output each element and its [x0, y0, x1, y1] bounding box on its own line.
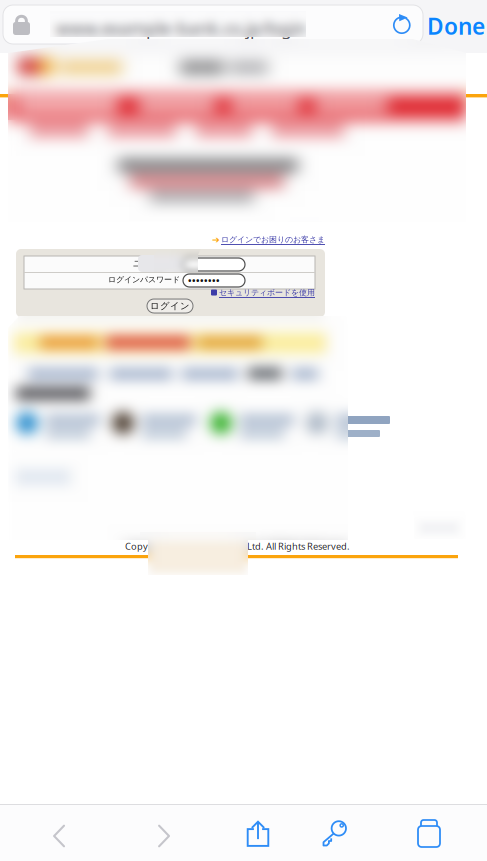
staticText: •••••••• [188, 274, 220, 287]
staticText: Done [427, 11, 485, 41]
button[interactable]: Forward [135, 818, 193, 854]
button[interactable]: ログイン [147, 299, 193, 313]
staticText: www.example-bank.co.jp/login [56, 17, 307, 40]
button[interactable]: ➔ [212, 233, 325, 246]
button[interactable]: Back [30, 818, 88, 854]
staticText: ログインでお困りのお客さま [221, 235, 325, 244]
button[interactable]: Secure connection [11, 12, 32, 36]
staticText: セキュリティボードを使用 [219, 288, 315, 297]
staticText: ➔ [212, 234, 220, 245]
button[interactable]: セキュリティボードを使用 [211, 287, 315, 298]
staticText: ログインパスワード [108, 275, 180, 284]
button[interactable]: Share [229, 815, 287, 853]
button[interactable]: Passwords [306, 815, 364, 853]
button[interactable]: Done [427, 7, 485, 45]
button[interactable]: Reload [392, 14, 413, 36]
staticText: Copyright © Example Bank, Ltd. All Right… [125, 540, 350, 552]
button[interactable]: Tabs [400, 815, 458, 853]
staticText: ログイン [150, 300, 190, 312]
staticText: ユーザＩＤ [133, 258, 180, 269]
